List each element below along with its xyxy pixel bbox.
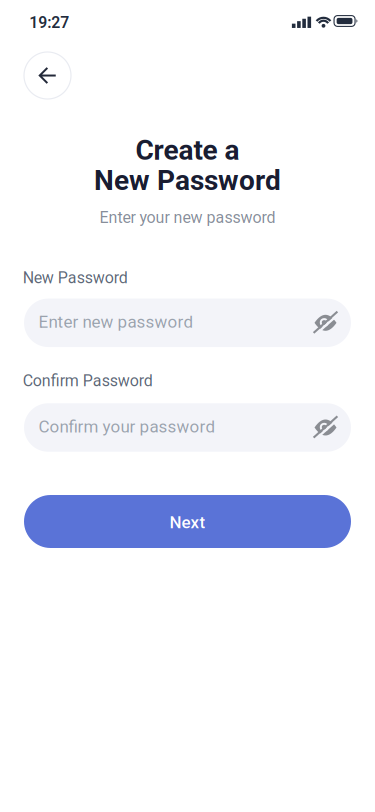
staticText: Enter your new password — [99, 208, 275, 227]
staticText: Next — [169, 512, 205, 532]
button[interactable] — [24, 52, 71, 99]
button[interactable]: Next — [24, 495, 351, 548]
staticText: Confirm your password — [39, 417, 216, 437]
button[interactable] — [314, 312, 336, 334]
staticText: Confirm Password — [23, 371, 153, 390]
button[interactable] — [314, 416, 336, 438]
staticText: New Password — [23, 268, 128, 287]
staticText: Create a — [135, 134, 239, 167]
staticText: Enter new password — [39, 312, 194, 332]
staticText: 19:27 — [29, 13, 69, 32]
staticText: New Password — [94, 164, 281, 197]
